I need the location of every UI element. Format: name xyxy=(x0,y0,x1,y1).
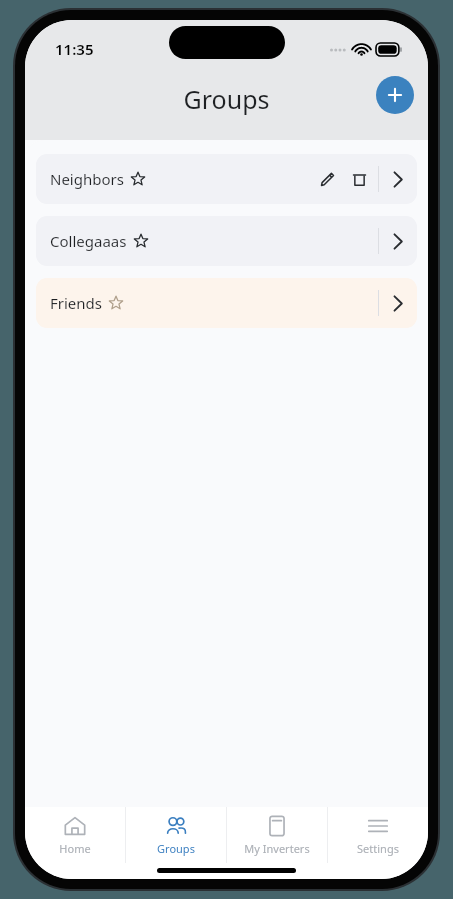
button[interactable]: Collegaaas xyxy=(36,216,417,266)
staticText: 11:35 xyxy=(55,39,94,59)
button[interactable]: Friends xyxy=(36,278,417,328)
button[interactable]: Open Neighbors xyxy=(379,154,417,204)
button[interactable]: Edit group xyxy=(312,164,342,194)
staticText: Settings xyxy=(328,841,428,856)
button[interactable]: Add group xyxy=(376,76,414,114)
staticText: Friends xyxy=(50,293,102,313)
staticText: My Inverters xyxy=(227,841,327,856)
button[interactable]: My Inverters xyxy=(227,807,327,863)
staticText: Groups xyxy=(25,82,428,116)
staticText: Neighbors xyxy=(50,169,124,189)
button[interactable]: Neighbors xyxy=(36,154,417,204)
button[interactable]: Home xyxy=(25,807,125,863)
button[interactable]: Delete group xyxy=(344,164,374,194)
button[interactable]: Open Friends xyxy=(379,278,417,328)
button[interactable]: Open Collegaaas xyxy=(379,216,417,266)
staticText: Groups xyxy=(126,841,226,856)
button[interactable]: Groups xyxy=(126,807,226,863)
staticText: Collegaaas xyxy=(50,231,127,251)
staticText: Home xyxy=(25,841,125,856)
button[interactable]: Settings xyxy=(328,807,428,863)
